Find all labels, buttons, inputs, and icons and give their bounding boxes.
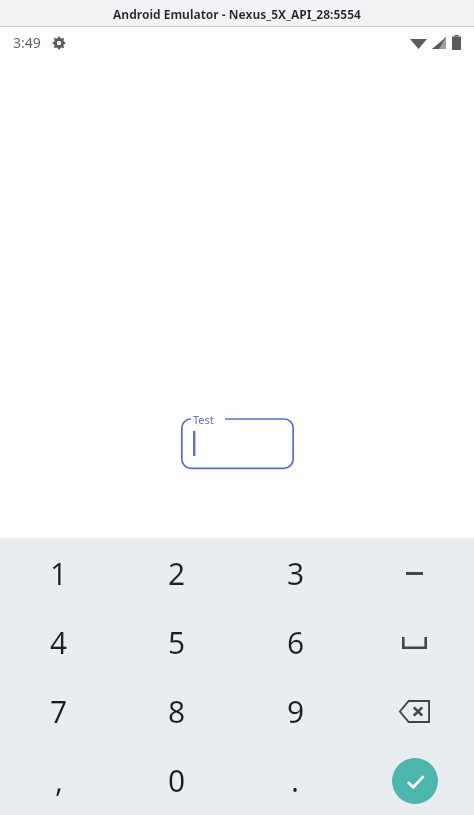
button[interactable]: 9 [236,677,355,746]
button[interactable]: 2 [118,538,236,608]
staticText: 3 [287,553,305,594]
button[interactable]: 7 [0,677,118,746]
staticText: Test [193,412,214,427]
button[interactable]: 4 [0,608,118,677]
staticText: 5 [168,622,186,663]
button[interactable]: 5 [118,608,236,677]
staticText: 4 [50,622,68,663]
staticText: 2 [168,553,186,594]
button[interactable]: Minus [355,538,474,608]
staticText: 8 [168,691,186,732]
staticText: , [55,760,64,801]
button[interactable]: Test [181,410,294,470]
staticText: 1 [50,553,68,594]
button[interactable]: 8 [118,677,236,746]
button[interactable]: Space [355,608,474,677]
staticText: . [291,760,300,801]
staticText: 0 [168,760,186,801]
button[interactable]: 1 [0,538,118,608]
button[interactable]: . [236,746,355,815]
button[interactable]: 0 [118,746,236,815]
button[interactable]: 6 [236,608,355,677]
button[interactable]: , [0,746,118,815]
staticText: 6 [287,622,305,663]
staticText: Android Emulator - Nexus_5X_API_28:5554 [113,6,361,22]
button[interactable]: Done [392,758,438,804]
staticText: 9 [287,691,305,732]
staticText: 3:49 [13,33,41,52]
staticText: 7 [50,691,68,732]
button[interactable]: Done [355,746,474,815]
button[interactable]: 3 [236,538,355,608]
button[interactable]: Backspace [355,677,474,746]
